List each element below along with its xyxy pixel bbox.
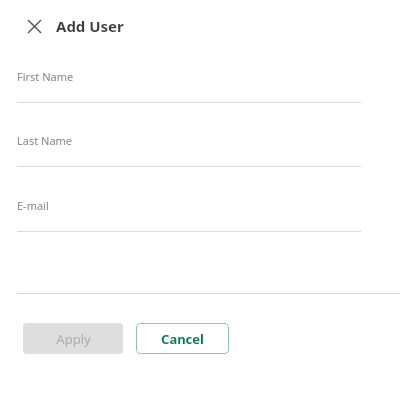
button[interactable]: Close (24, 16, 44, 36)
button[interactable]: Cancel (136, 323, 229, 354)
staticText: Add User (56, 16, 124, 36)
staticText: First Name (17, 69, 74, 84)
staticText: E-mail (17, 198, 49, 213)
staticText: Last Name (17, 133, 73, 148)
staticText: Apply (56, 330, 91, 348)
button[interactable]: Apply (23, 323, 123, 354)
staticText: Cancel (161, 330, 204, 348)
